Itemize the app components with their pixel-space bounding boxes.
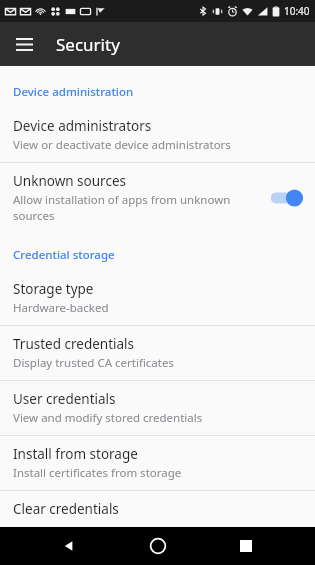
staticText: Trusted credentials — [13, 335, 135, 353]
button[interactable]: Home — [138, 527, 178, 565]
button[interactable]: Install from storage — [0, 436, 315, 490]
staticText: Allow installation of apps from unknown … — [13, 192, 270, 224]
staticText: Storage type — [13, 280, 94, 298]
staticText: User credentials — [13, 390, 116, 408]
button[interactable]: Device administrators — [0, 108, 315, 162]
staticText: 10:40 — [284, 4, 310, 18]
button[interactable]: Unknown sources toggle, on — [270, 188, 304, 208]
button[interactable]: Storage type — [0, 271, 315, 325]
staticText: Device administration — [13, 84, 134, 100]
button[interactable]: Open navigation menu — [8, 28, 40, 60]
staticText: Unknown sources — [13, 172, 126, 190]
staticText: Device administrators — [13, 117, 152, 135]
button[interactable]: User credentials — [0, 381, 315, 435]
staticText: View or deactivate device administrators — [13, 137, 231, 153]
button[interactable]: Clear credentials — [0, 491, 315, 527]
button[interactable]: Recent apps — [226, 527, 266, 565]
staticText: Clear credentials — [13, 500, 119, 518]
staticText: View and modify stored credentials — [13, 410, 203, 426]
staticText: Display trusted CA certificates — [13, 355, 174, 371]
staticText: Credential storage — [13, 247, 115, 263]
button[interactable]: Back — [49, 527, 89, 565]
staticText: Security — [56, 33, 120, 56]
staticText: Hardware-backed — [13, 300, 109, 316]
staticText: Install certificates from storage — [13, 465, 182, 481]
button[interactable]: Trusted credentials — [0, 326, 315, 380]
button[interactable]: Unknown sources — [0, 163, 315, 233]
staticText: Install from storage — [13, 445, 138, 463]
